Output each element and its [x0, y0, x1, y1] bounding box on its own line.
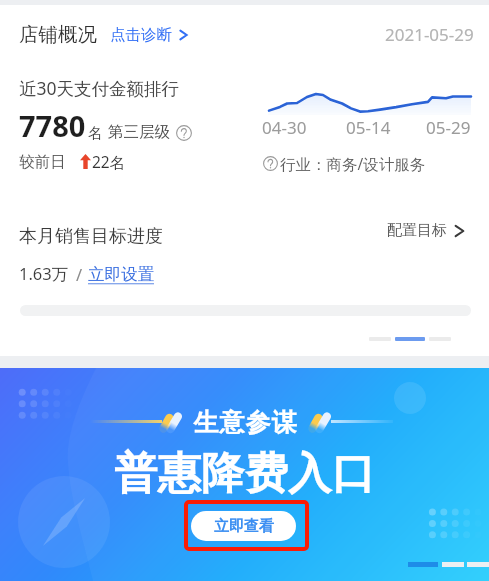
button[interactable]: 立即设置 — [88, 264, 154, 285]
staticText: 7780 — [19, 106, 86, 145]
staticText: 05-14 — [346, 116, 391, 139]
button[interactable]: 配置目标 — [387, 221, 465, 240]
staticText: 名 — [88, 124, 103, 142]
staticText: 05-29 — [426, 116, 471, 139]
staticText: 行业：商务/设计服务 — [280, 153, 426, 174]
staticText: 立即查看 — [214, 517, 274, 536]
staticText: 本月销售目标进度 — [19, 225, 163, 248]
staticText: 1.63万 — [19, 262, 69, 285]
staticText: 较前日 — [19, 152, 66, 172]
staticText: 点击诊断 — [110, 25, 172, 45]
staticText: 店铺概况 — [19, 22, 97, 47]
staticText: 04-30 — [262, 116, 307, 139]
button[interactable]: 立即查看 — [191, 511, 296, 541]
staticText: 近30天支付金额排行 — [19, 76, 180, 100]
staticText: 2021-05-29 — [385, 23, 474, 46]
staticText: 普惠降费入口 — [114, 447, 375, 501]
staticText: 22名 — [92, 151, 126, 172]
button[interactable]: 点击诊断 — [110, 25, 188, 45]
staticText: / — [76, 263, 83, 285]
staticText: 第三层级 — [108, 122, 170, 142]
staticText: 配置目标 — [387, 221, 447, 240]
staticText: 生意参谋 — [193, 407, 297, 438]
